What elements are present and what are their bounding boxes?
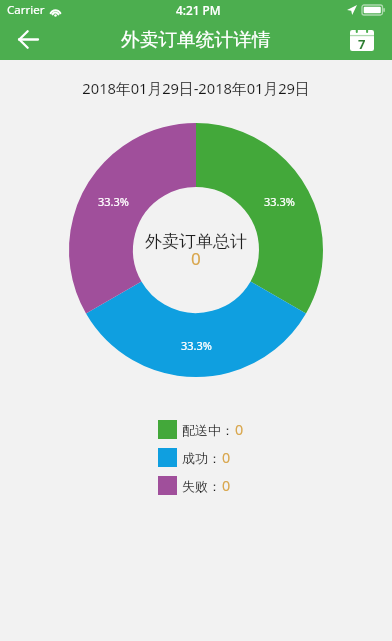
staticText: 33.3% bbox=[181, 338, 212, 353]
button[interactable]: Back bbox=[0, 20, 56, 60]
staticText: 0 bbox=[222, 448, 231, 467]
staticText: 配送中： bbox=[182, 422, 234, 438]
staticText: 33.3% bbox=[264, 194, 295, 209]
staticText: 0 bbox=[191, 247, 201, 270]
button[interactable]: 配送中： bbox=[158, 420, 244, 439]
staticText: 4:21 PM bbox=[176, 2, 221, 18]
staticText: 0 bbox=[235, 420, 244, 439]
staticText: 外卖订单总计 bbox=[145, 231, 247, 252]
staticText: Carrier bbox=[7, 2, 45, 18]
staticText: 外卖订单统计详情 bbox=[121, 28, 271, 52]
staticText: 成功： bbox=[182, 450, 221, 466]
button[interactable]: Select date bbox=[332, 20, 392, 60]
staticText: 33.3% bbox=[98, 194, 129, 209]
staticText: 2018年01月29日-2018年01月29日 bbox=[0, 78, 392, 98]
staticText: 0 bbox=[222, 476, 231, 495]
staticText: 7 bbox=[358, 35, 366, 53]
staticText: 失败： bbox=[182, 478, 221, 494]
button[interactable]: 失败： bbox=[158, 476, 231, 495]
button[interactable]: 成功： bbox=[158, 448, 231, 467]
